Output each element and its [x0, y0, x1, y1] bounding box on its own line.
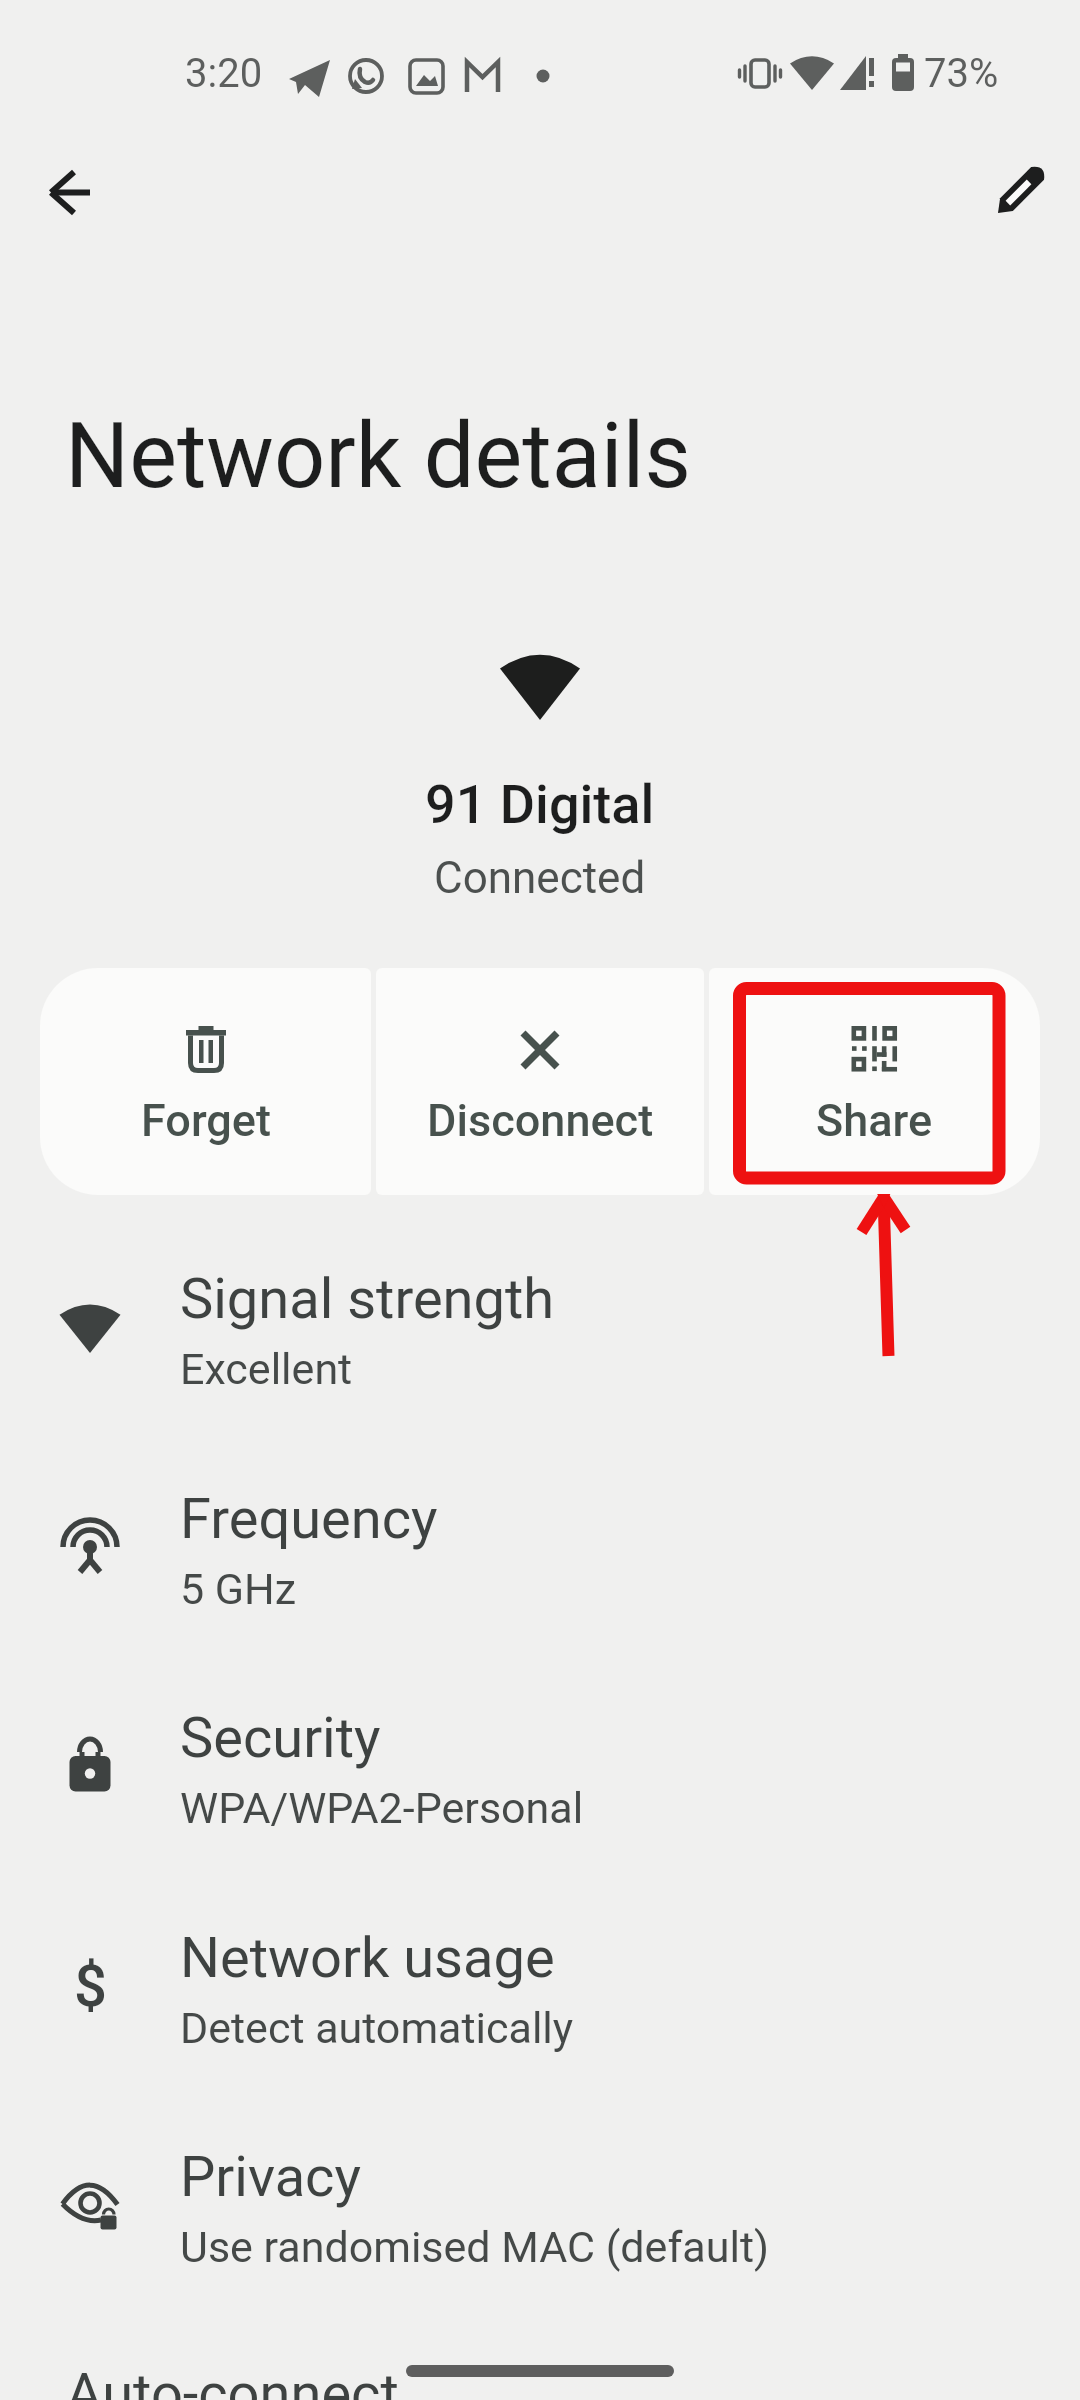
staticText: Use randomised MAC (default) [180, 2222, 769, 2272]
button[interactable]: Forget [40, 968, 371, 1195]
staticText: 5 GHz [180, 1564, 297, 1614]
button[interactable]: Privacy [0, 2102, 1080, 2322]
button[interactable] [22, 145, 118, 241]
button[interactable]: Disconnect [376, 968, 704, 1195]
staticText: $ [74, 1952, 107, 2020]
staticText: WPA/WPA2-Personal [180, 1783, 584, 1833]
staticText: Excellent [180, 1344, 353, 1394]
button[interactable]: Auto-connect [0, 2322, 1080, 2400]
staticText: Privacy [180, 2144, 361, 2210]
staticText: Signal strength [180, 1266, 555, 1332]
staticText: Forget [141, 1094, 271, 1147]
button[interactable]: Share [709, 968, 1040, 1195]
button[interactable]: Frequency [0, 1444, 1080, 1664]
staticText: Connected [434, 852, 646, 904]
button[interactable]: Signal strength [0, 1224, 1080, 1444]
staticText: Network details [65, 404, 691, 509]
staticText: Disconnect [427, 1094, 654, 1147]
staticText: Detect automatically [180, 2003, 574, 2053]
staticText: 91 Digital [425, 773, 655, 836]
staticText: 3:20 [185, 50, 263, 97]
staticText: Security [180, 1705, 381, 1771]
staticText: Frequency [180, 1486, 438, 1552]
staticText: 73% [924, 50, 999, 97]
button[interactable] [971, 143, 1067, 239]
staticText: Auto-connect [66, 2361, 399, 2400]
button[interactable]: Network usage [0, 1883, 1080, 2103]
staticText: Share [816, 1094, 933, 1147]
staticText: Network usage [180, 1925, 555, 1991]
button[interactable]: Security [0, 1663, 1080, 1883]
